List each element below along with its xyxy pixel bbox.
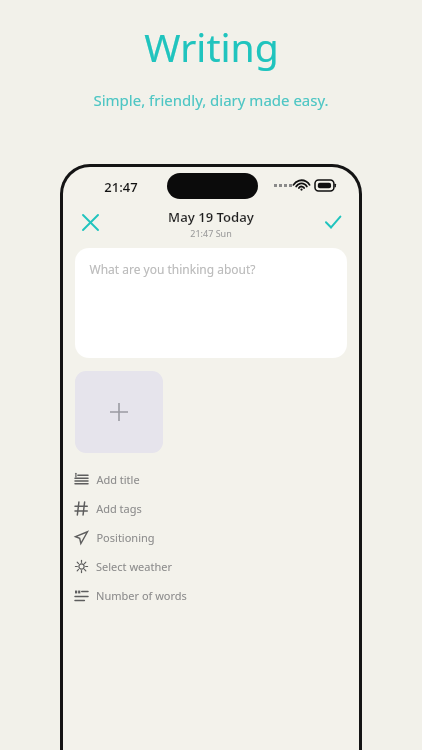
- button[interactable]: Select weather: [63, 552, 359, 581]
- button[interactable]: What are you thinking about?: [75, 248, 347, 358]
- staticText: 21:47 Sun: [190, 227, 232, 238]
- button[interactable]: Add title: [63, 465, 359, 494]
- button[interactable]: Positioning: [63, 523, 359, 552]
- staticText: Writing: [144, 20, 279, 73]
- staticText: Add tags: [96, 501, 142, 516]
- button[interactable]: Add tags: [63, 494, 359, 523]
- staticText: Simple, friendly, diary made easy.: [93, 90, 329, 110]
- staticText: Positioning: [96, 530, 155, 545]
- staticText: What are you thinking about?: [89, 261, 256, 277]
- staticText: Select weather: [96, 559, 172, 574]
- button[interactable]: Add photo: [75, 371, 163, 453]
- staticText: May 19 Today: [168, 208, 254, 226]
- staticText: Add title: [96, 472, 140, 487]
- button[interactable]: Number of words: [63, 581, 359, 610]
- button[interactable]: Close: [73, 207, 107, 237]
- button[interactable]: May 19 Today: [168, 208, 254, 238]
- staticText: Number of words: [96, 588, 187, 603]
- button[interactable]: Save: [316, 207, 350, 237]
- staticText: 21:47: [104, 178, 138, 196]
